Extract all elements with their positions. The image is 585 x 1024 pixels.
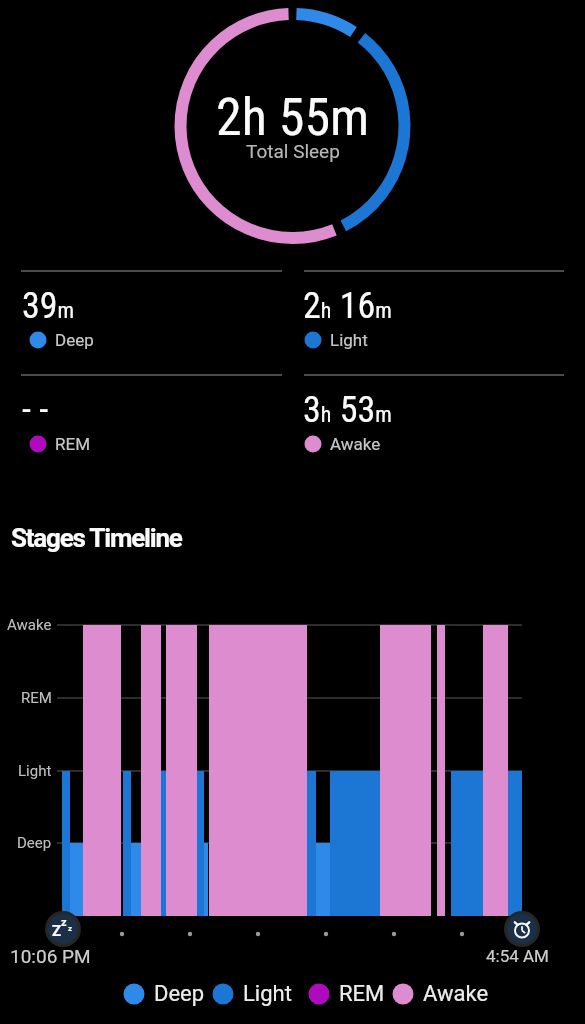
staticText: Deep bbox=[154, 981, 205, 1007]
staticText: z bbox=[61, 916, 67, 929]
staticText: 4:54 AM bbox=[486, 946, 549, 966]
staticText: Z bbox=[52, 922, 62, 940]
staticText: z bbox=[68, 924, 73, 933]
button[interactable] bbox=[390, 981, 470, 1008]
staticText: REM bbox=[339, 981, 385, 1007]
button[interactable] bbox=[306, 981, 382, 1008]
staticText: 2h 55m bbox=[216, 87, 370, 148]
button[interactable] bbox=[210, 981, 290, 1008]
staticText: Light bbox=[18, 762, 52, 780]
staticText: REM bbox=[21, 689, 52, 707]
button[interactable] bbox=[304, 271, 564, 371]
staticText: Light bbox=[243, 981, 292, 1007]
staticText: Deep bbox=[17, 834, 52, 852]
button[interactable] bbox=[46, 912, 80, 946]
staticText: REM bbox=[55, 434, 90, 454]
staticText: Stages Timeline bbox=[11, 523, 182, 553]
button[interactable] bbox=[21, 271, 282, 371]
button[interactable] bbox=[121, 981, 203, 1008]
staticText: 2h 16m bbox=[303, 285, 392, 327]
staticText: Awake bbox=[330, 434, 381, 454]
staticText: 39m bbox=[22, 285, 75, 327]
button[interactable] bbox=[304, 375, 564, 475]
staticText: Total Sleep bbox=[246, 140, 340, 162]
staticText: - - bbox=[22, 389, 49, 431]
staticText: Deep bbox=[55, 330, 94, 350]
staticText: Awake bbox=[423, 981, 489, 1007]
button[interactable] bbox=[505, 912, 539, 946]
staticText: Light bbox=[330, 330, 368, 350]
button[interactable] bbox=[21, 375, 282, 475]
staticText: Awake bbox=[7, 616, 52, 634]
staticText: 10:06 PM bbox=[10, 945, 91, 967]
staticText: 3h 53m bbox=[303, 389, 392, 431]
